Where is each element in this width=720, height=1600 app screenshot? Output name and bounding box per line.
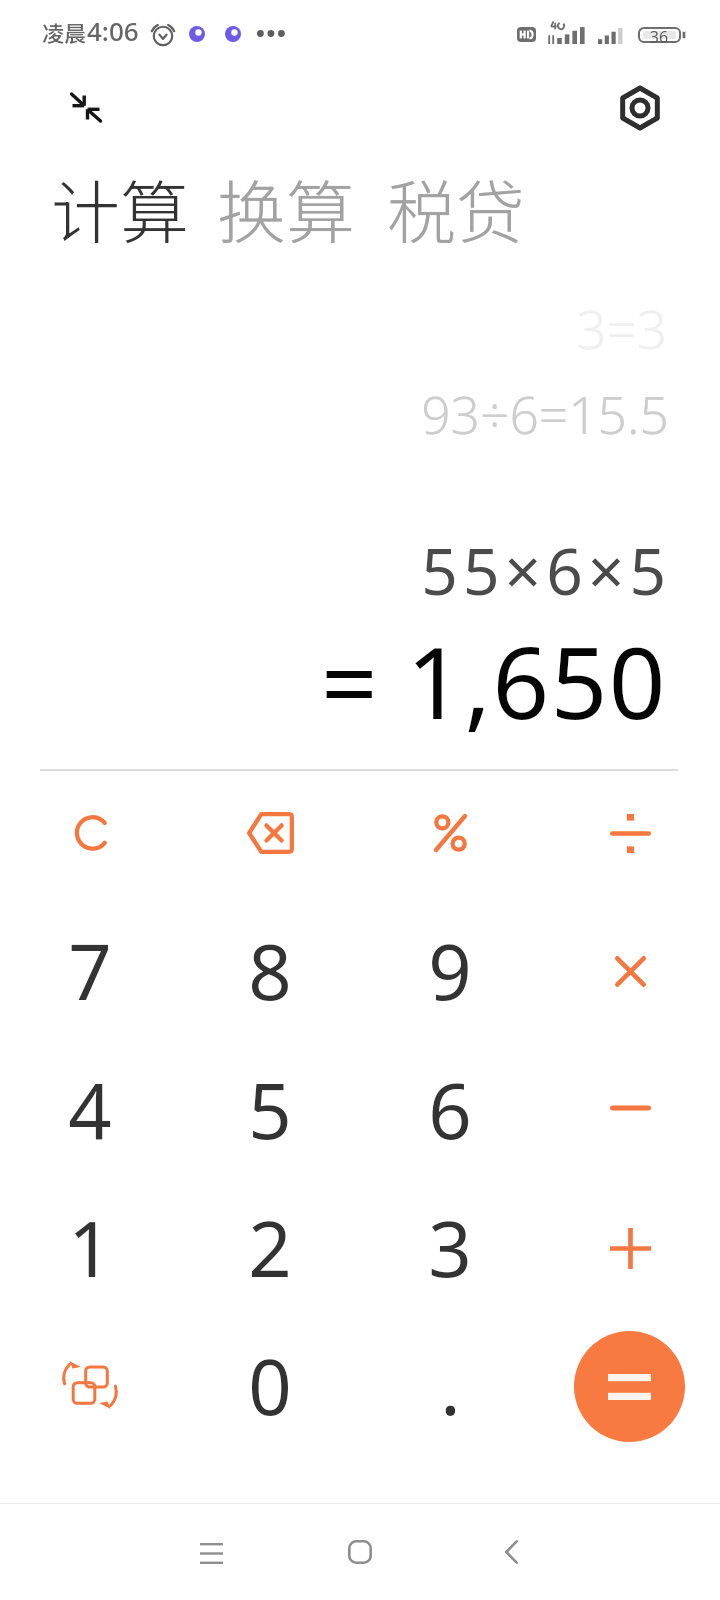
staticText: 6 <box>428 1058 472 1162</box>
staticText: 93÷6=15.5 <box>2 379 669 449</box>
staticText: 7 <box>68 919 112 1023</box>
button[interactable]: Multiply <box>540 902 720 1040</box>
button[interactable]: Backspace <box>180 764 360 902</box>
button[interactable]: 4 <box>0 1041 180 1179</box>
other: Plus <box>610 1228 651 1269</box>
other: Backspace <box>247 812 294 854</box>
other: Divide <box>610 814 651 853</box>
button[interactable]: 计算 <box>46 156 194 260</box>
button[interactable]: 3 <box>360 1179 540 1317</box>
button[interactable]: 换算 <box>212 156 360 260</box>
staticText: 0 <box>248 1334 292 1438</box>
staticText: 税贷 <box>387 158 525 258</box>
staticText: 1 <box>68 1196 112 1300</box>
staticText: 凌晨 <box>42 16 87 48</box>
button[interactable]: Back <box>480 1521 542 1583</box>
staticText: 3 <box>428 1196 472 1300</box>
button[interactable]: 2 <box>180 1179 360 1317</box>
button[interactable]: Clear <box>0 764 180 902</box>
button[interactable]: 税贷 <box>382 156 530 260</box>
button[interactable]: . <box>360 1317 540 1455</box>
button[interactable]: 9 <box>360 902 540 1040</box>
button[interactable]: Recent apps <box>180 1522 242 1584</box>
button[interactable]: Divide <box>540 764 720 902</box>
staticText: 4:06 <box>87 13 139 48</box>
staticText: 36 <box>638 26 680 48</box>
button[interactable]: 1 <box>0 1179 180 1317</box>
button[interactable]: 5 <box>180 1041 360 1179</box>
button[interactable]: Settings <box>605 73 675 143</box>
button[interactable]: 8 <box>180 902 360 1040</box>
staticText: 2 <box>248 1196 292 1300</box>
button[interactable]: 6 <box>360 1041 540 1179</box>
staticText: 4 <box>68 1058 112 1162</box>
staticText: 5 <box>248 1058 292 1162</box>
button[interactable]: Percent <box>360 764 540 902</box>
staticText: = 1,650 <box>0 613 667 748</box>
button[interactable]: Plus <box>540 1179 720 1317</box>
staticText: 8 <box>248 919 292 1023</box>
button[interactable]: Convert <box>0 1317 180 1455</box>
other: Percent <box>433 813 468 853</box>
staticText: 计算 <box>51 158 189 258</box>
staticText: 55×6×5 <box>4 527 671 614</box>
staticText: 9 <box>428 919 472 1023</box>
button[interactable]: Equals <box>574 1331 685 1442</box>
button[interactable]: Home <box>329 1521 391 1583</box>
other: Unit converter <box>60 1355 120 1415</box>
staticText: 换算 <box>217 158 355 258</box>
other: Minus <box>610 1105 651 1111</box>
button[interactable]: 7 <box>0 902 180 1040</box>
staticText: . <box>440 1334 461 1438</box>
button[interactable]: Minus <box>540 1041 720 1179</box>
other: Clear <box>73 813 113 853</box>
button[interactable]: 0 <box>180 1317 360 1455</box>
other: Multiply <box>615 956 646 987</box>
button[interactable]: Collapse <box>52 74 120 142</box>
